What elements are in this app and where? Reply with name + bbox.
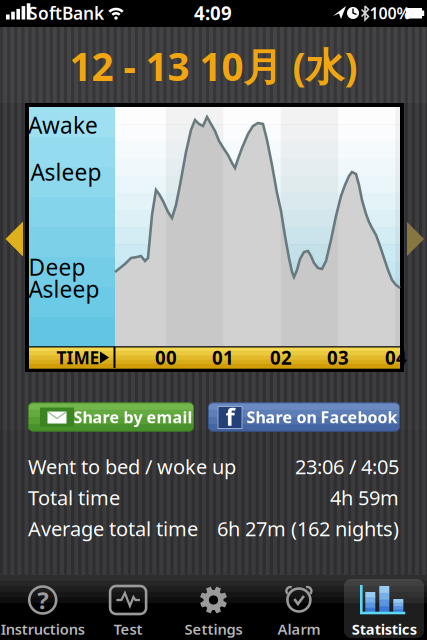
staticText: SoftBank — [28, 1, 104, 24]
staticText: Share by email — [73, 406, 192, 428]
staticText: 04 — [385, 345, 407, 370]
button[interactable]: Previous night — [4, 221, 23, 256]
staticText: Test — [114, 619, 143, 639]
button[interactable]: Test — [85, 575, 171, 640]
staticText: Went to bed / woke up — [28, 453, 236, 480]
staticText: Asleep — [28, 274, 99, 304]
staticText: Awake — [28, 110, 98, 140]
staticText: Average total time — [28, 515, 198, 542]
button[interactable]: Share by email — [28, 402, 194, 431]
staticText: Asleep — [30, 157, 101, 187]
staticText: Deep — [28, 252, 85, 282]
staticText: 4h 59m — [330, 484, 399, 511]
staticText: 23:06 / 4:05 — [295, 453, 399, 480]
staticText: TIME — [56, 346, 99, 369]
button[interactable]: Alarm — [256, 575, 342, 640]
staticText: Share on Facebook — [246, 406, 397, 428]
staticText: 02 — [270, 345, 292, 370]
staticText: Alarm — [277, 619, 320, 639]
staticText: ? — [37, 584, 48, 616]
staticText: 6h 27m (162 nights) — [217, 515, 399, 542]
staticText: Total time — [28, 484, 120, 511]
staticText: 12 - 13 10月 (水) — [69, 40, 357, 92]
button[interactable]: Next night — [407, 222, 424, 256]
button[interactable]: Settings — [171, 575, 256, 640]
button[interactable]: Statistics — [342, 575, 427, 640]
staticText: 100% — [369, 2, 410, 24]
button[interactable]: f — [208, 402, 400, 431]
staticText: f — [225, 401, 234, 432]
staticText: 03 — [327, 345, 349, 370]
staticText: Settings — [184, 619, 242, 639]
staticText: 4:09 — [194, 1, 232, 25]
staticText: Instructions — [1, 619, 85, 639]
staticText: 00 — [155, 345, 177, 370]
staticText: Statistics — [352, 619, 417, 639]
button[interactable]: ? — [0, 575, 85, 640]
staticText: 01 — [212, 345, 234, 370]
